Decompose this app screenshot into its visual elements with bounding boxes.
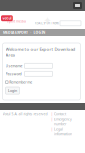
staticText: | (51, 127, 53, 132)
button[interactable]: | (51, 111, 81, 116)
staticText: Login (8, 88, 17, 93)
staticText: | (51, 117, 53, 121)
button[interactable]: | (51, 127, 81, 136)
staticText: LOGIN (34, 30, 46, 35)
button[interactable]: sport media (0, 13, 30, 25)
button[interactable]: Menu (73, 2, 85, 9)
staticText: Legal information (54, 127, 72, 136)
staticText: Username (5, 63, 22, 68)
staticText: | (51, 111, 53, 116)
staticText: Remember me (9, 80, 32, 84)
staticText: sport media (7, 19, 26, 24)
staticText: MEDIA EXPORT (3, 30, 28, 35)
staticText: ✦ (43, 14, 52, 27)
button[interactable]: MEDIA EXPORT (3, 30, 28, 35)
staticText: Votul S.A. all rights reserved (2, 111, 47, 116)
button[interactable]: Login (5, 87, 19, 94)
staticText: Password (5, 71, 21, 76)
staticText: > (30, 30, 32, 34)
button[interactable]: LOGIN (34, 30, 46, 35)
button[interactable]: | (51, 117, 81, 126)
staticText: Contact (54, 111, 66, 116)
staticText: Emergency number (54, 117, 72, 126)
staticText: votul (2, 16, 11, 21)
button[interactable]: Remember me (5, 80, 32, 84)
staticText: RETAIL SPORT NEWS (34, 22, 58, 25)
staticText: Welcome to our Export Download Area (5, 46, 75, 58)
